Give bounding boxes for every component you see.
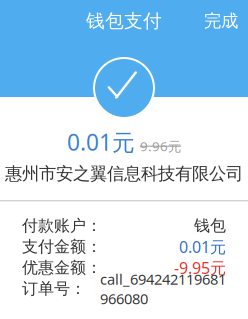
staticText: 0.01元 (179, 236, 226, 257)
staticText: 完成 (204, 10, 238, 32)
staticText: 0.01元 (67, 127, 135, 157)
staticText: -9.95元 (174, 257, 226, 278)
staticText: 付款账户： (22, 216, 102, 236)
staticText: 钱包支付 (86, 9, 162, 32)
staticText: 钱包 (194, 216, 226, 236)
staticText: 订单号： (22, 279, 86, 299)
staticText: call_694242119681966080 (100, 269, 226, 308)
staticText: 优惠金额： (22, 258, 102, 278)
staticText: 惠州市安之翼信息科技有限公司 (5, 163, 243, 184)
button[interactable]: 完成 (194, 4, 248, 38)
staticText: 9.96元 (140, 137, 181, 155)
staticText: 支付金额： (22, 237, 102, 257)
